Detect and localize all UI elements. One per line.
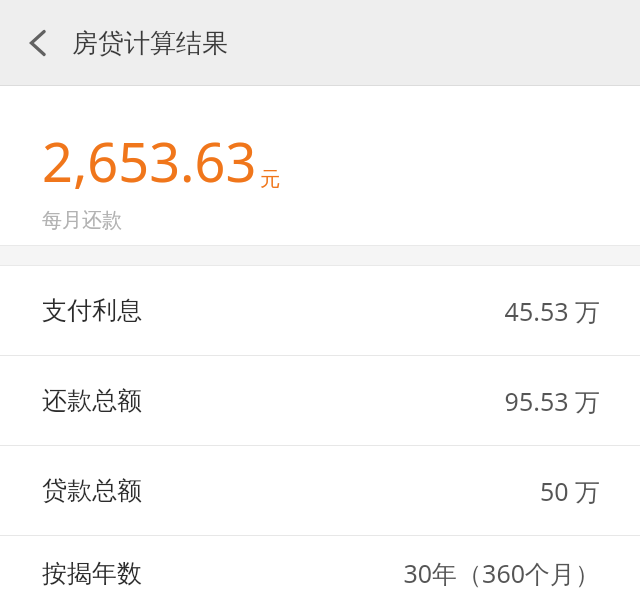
button[interactable]: 贷款总额 (0, 446, 640, 535)
staticText: 支付利息 (42, 295, 142, 326)
staticText: 2,653.63 (42, 124, 257, 198)
staticText: 还款总额 (42, 385, 142, 416)
button[interactable]: 按揭年数 (0, 536, 640, 610)
staticText: 45.53 万 (504, 294, 600, 328)
button[interactable]: 还款总额 (0, 356, 640, 445)
staticText: 房贷计算结果 (72, 27, 228, 60)
staticText: 贷款总额 (42, 475, 142, 506)
staticText: 30年（360个月） (403, 556, 600, 590)
staticText: 按揭年数 (42, 558, 142, 589)
staticText: 95.53 万 (504, 384, 600, 418)
staticText: 每月还款 (42, 208, 122, 233)
staticText: 50 万 (539, 474, 600, 508)
button[interactable]: 支付利息 (0, 266, 640, 355)
button[interactable]: Back (10, 15, 66, 71)
staticText: 元 (260, 167, 280, 192)
